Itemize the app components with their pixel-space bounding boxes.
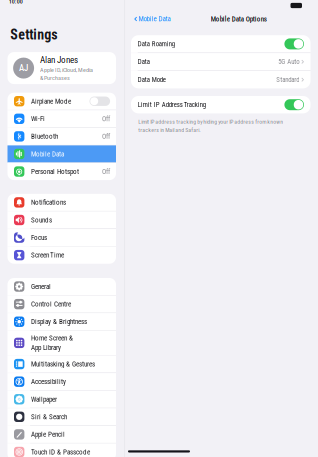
staticText: Siri & Search (31, 413, 67, 421)
button[interactable]: Focus (7, 229, 116, 246)
button[interactable]: Wi-Fi (7, 110, 116, 127)
staticText: App Library (31, 343, 61, 352)
staticText: Control Centre (31, 300, 71, 308)
button[interactable]: AJ (7, 52, 116, 84)
staticText: Off (102, 167, 110, 176)
staticText: Personal Hotspot (31, 167, 79, 176)
staticText: Off (102, 115, 110, 123)
staticText: General (31, 282, 51, 291)
button[interactable]: Limit IP Address Tracking (131, 96, 310, 113)
button[interactable]: Home Screen & (7, 331, 116, 355)
button[interactable]: Data Mode (131, 71, 310, 88)
staticText: Standard (276, 76, 299, 84)
button[interactable]: Data (131, 53, 310, 70)
staticText: Apple Pencil (31, 430, 65, 439)
staticText: Focus (31, 233, 47, 242)
staticText: Data Mode (138, 76, 166, 84)
staticText: Accessibility (31, 377, 66, 386)
staticText: Mobile Data (138, 15, 170, 23)
staticText: Limit IP Address Tracking (138, 101, 206, 109)
staticText: Apple ID, iCloud, Media (40, 66, 93, 73)
staticText: Wi-Fi (31, 115, 45, 123)
staticText: & Purchases (40, 74, 70, 82)
staticText: Alan Jones (40, 55, 78, 65)
button[interactable]: Touch ID & Passcode (7, 443, 116, 457)
button[interactable]: General (7, 278, 116, 295)
staticText: Screen Time (31, 251, 64, 259)
staticText: Wallpaper (31, 395, 57, 403)
button[interactable]: Personal Hotspot (7, 163, 116, 180)
staticText: Data (138, 58, 150, 66)
staticText: Bluetooth (31, 132, 58, 140)
button[interactable]: Screen Time (7, 247, 116, 264)
button[interactable]: Mobile Data (7, 145, 116, 162)
button[interactable]: Sounds (7, 211, 116, 229)
button[interactable]: Accessibility (7, 373, 116, 390)
staticText: Limit IP address tracking by hiding your… (138, 118, 283, 125)
button[interactable]: Airplane Mode (7, 93, 116, 110)
staticText: Display & Brightness (31, 318, 87, 326)
button[interactable]: Notifications (7, 194, 116, 211)
staticText: 5G Auto (278, 58, 299, 66)
staticText: Data Roaming (138, 40, 175, 48)
staticText: AJ (19, 63, 28, 73)
button[interactable]: Siri & Search (7, 408, 116, 425)
button[interactable]: Control Centre (7, 296, 116, 313)
staticText: Mobile Data Options (211, 15, 267, 23)
staticText: Home Screen & (31, 334, 73, 342)
staticText: 10:00 (9, 0, 23, 5)
staticText: Notifications (31, 198, 66, 207)
staticText: trackers in Mail and Safari. (138, 127, 201, 133)
button[interactable]: Data Roaming (131, 35, 310, 53)
staticText: Sounds (31, 216, 52, 224)
staticText: Airplane Mode (31, 97, 71, 105)
button[interactable]: Mobile Data (131, 12, 174, 26)
staticText: Multitasking & Gestures (31, 360, 95, 368)
staticText: Settings (10, 26, 57, 43)
button[interactable]: Bluetooth (7, 128, 116, 145)
staticText: Touch ID & Passcode (31, 448, 90, 456)
button[interactable]: Wallpaper (7, 391, 116, 408)
staticText: Mobile Data (31, 150, 64, 158)
button[interactable]: Display & Brightness (7, 313, 116, 330)
staticText: Off (102, 132, 110, 140)
button[interactable]: Apple Pencil (7, 426, 116, 443)
button[interactable]: Multitasking & Gestures (7, 355, 116, 373)
